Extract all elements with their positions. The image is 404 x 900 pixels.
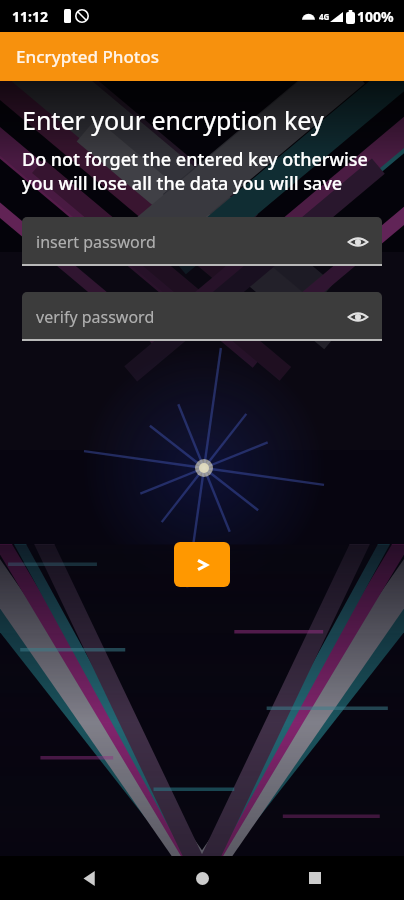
button[interactable]: Back [65, 856, 113, 900]
staticText: insert password [36, 231, 156, 253]
staticText: 100% [357, 7, 394, 26]
staticText: Do not forget the entered key otherwise … [22, 147, 382, 195]
button[interactable]: verify password [22, 292, 382, 341]
staticText: Enter your encryption key [22, 103, 324, 137]
staticText: verify password [36, 306, 155, 328]
staticText: Encrypted Photos [16, 45, 159, 68]
button[interactable]: Home [178, 856, 226, 900]
staticText: 4G [319, 11, 330, 22]
button[interactable]: insert password [22, 217, 382, 266]
staticText: 11:12 [12, 7, 48, 26]
button[interactable]: Recents [291, 856, 339, 900]
button[interactable]: Next [174, 542, 230, 587]
